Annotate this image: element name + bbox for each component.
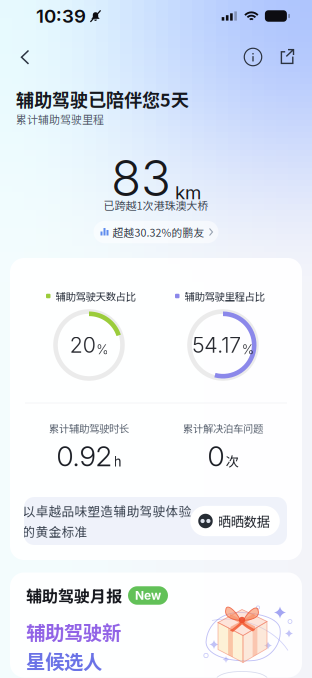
staticText: 83 [111, 148, 171, 208]
staticText: New [135, 588, 161, 603]
staticText: 的黄金标准 [22, 522, 87, 540]
staticText: 辅助驾驶月报 [26, 584, 122, 607]
staticText: km [175, 181, 201, 204]
staticText: 辅助驾驶里程占比 [184, 288, 264, 304]
button[interactable]: 晒晒数据 [190, 506, 280, 536]
staticText: 辅助驾驶新 [26, 617, 121, 645]
button[interactable]: Share [270, 40, 304, 74]
button[interactable]: 辅助驾驶月报 [10, 572, 302, 677]
staticText: 晒晒数据 [218, 511, 270, 531]
button[interactable]: Back [8, 40, 42, 74]
staticText: % [242, 341, 254, 357]
button[interactable]: 超越30.32%的鹏友 [93, 221, 218, 243]
staticText: 辅助驾驶已陪伴您5天 [16, 86, 189, 112]
staticText: 累计辅助驾驶里程 [16, 111, 104, 127]
staticText: 次 [225, 451, 238, 470]
staticText: 以卓越品味塑造辅助驾驶体验 [22, 502, 191, 520]
staticText: 20 [70, 332, 96, 358]
staticText: % [96, 341, 108, 357]
staticText: 累计辅助驾驶时长 [49, 420, 129, 436]
staticText: 10:39 [36, 5, 86, 27]
staticText: 辅助驾驶天数占比 [55, 288, 135, 304]
staticText: 星候选人 [26, 646, 102, 674]
staticText: 0.92 [56, 439, 112, 473]
staticText: 累计解决泊车问题 [183, 420, 263, 436]
staticText: h [113, 451, 121, 470]
staticText: 超越30.32%的鹏友 [112, 224, 204, 240]
staticText: 已跨越1次港珠澳大桥 [103, 197, 208, 213]
staticText: 54.17 [192, 332, 241, 358]
button[interactable]: Information [236, 40, 270, 74]
staticText: 0 [207, 439, 224, 473]
